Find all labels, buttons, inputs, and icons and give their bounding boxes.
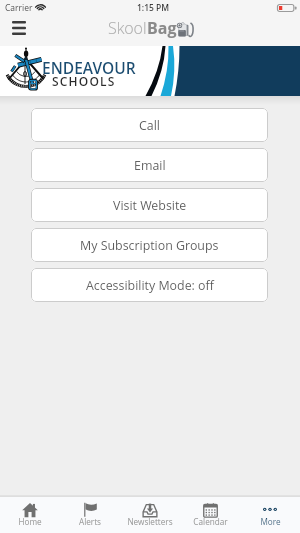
button[interactable]: More	[240, 497, 300, 533]
staticText: Calendar	[193, 516, 228, 527]
staticText: Bag	[147, 17, 177, 39]
button[interactable]: Accessibility Mode: off	[31, 268, 268, 302]
staticText: More	[260, 516, 281, 527]
button[interactable]: Visit Website	[31, 188, 268, 222]
staticText: Email	[134, 157, 166, 174]
button[interactable]: Menu	[2, 12, 36, 43]
staticText: Home	[18, 516, 42, 527]
button[interactable]: My Subscription Groups	[31, 228, 268, 262]
button[interactable]: Home	[0, 497, 60, 533]
staticText: Newsletters	[127, 516, 173, 527]
staticText: Call	[139, 117, 160, 134]
staticText: Accessibility Mode: off	[86, 277, 214, 294]
button[interactable]: Call	[31, 108, 268, 142]
staticText: ENDEAVOUR	[42, 57, 136, 78]
staticText: Alerts	[79, 516, 101, 527]
staticText: SCHOOLS	[52, 73, 116, 89]
staticText: Carrier	[5, 2, 33, 14]
button[interactable]: Calendar	[180, 497, 240, 533]
button[interactable]: Alerts	[60, 497, 120, 533]
staticText: 1:15 PM	[137, 2, 170, 14]
button[interactable]: Email	[31, 148, 268, 182]
staticText: My Subscription Groups	[80, 237, 219, 254]
staticText: Visit Website	[113, 197, 187, 214]
button[interactable]: Newsletters	[120, 497, 180, 533]
staticText: Skool	[108, 17, 147, 39]
